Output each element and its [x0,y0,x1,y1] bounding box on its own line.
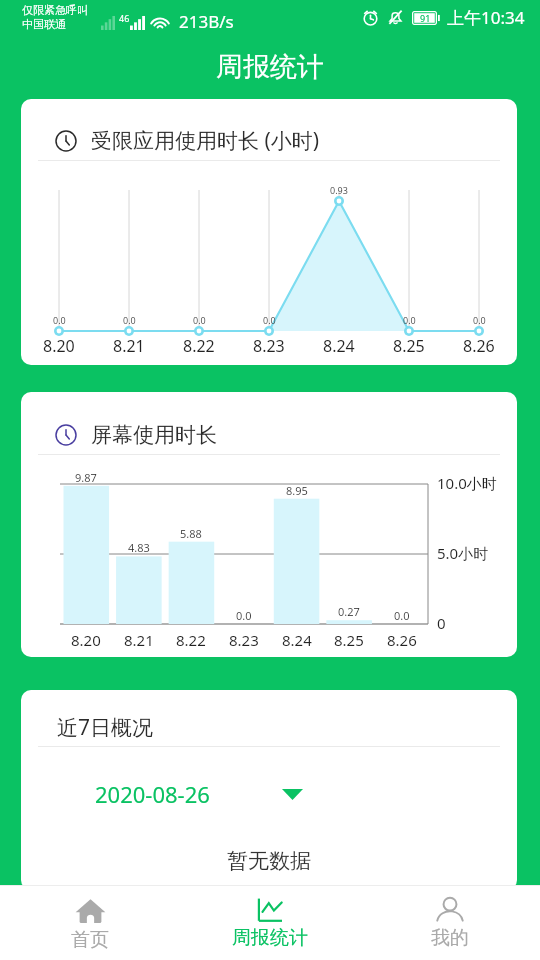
staticText: 91 [420,12,431,24]
staticText: 8.25 [334,630,364,650]
staticText: 暂无数据 [227,848,311,874]
staticText: 8.22 [183,335,215,357]
staticText: 8.23 [253,335,285,357]
staticText: 8.22 [176,630,206,650]
other: Profile [435,895,465,925]
button[interactable]: 2020-08-26 [95,779,303,809]
staticText: 我的 [431,926,469,950]
staticText: 受限应用使用时长 (小时) [91,126,320,155]
staticText: 2020-08-26 [95,779,210,809]
staticText: 8.20 [43,335,75,357]
other: Select date [282,789,303,800]
staticText: 0.0 [193,314,206,326]
staticText: 8.21 [124,630,154,650]
staticText: 0.0 [236,608,252,623]
button[interactable]: Weekly report [180,885,360,960]
staticText: 仅限紧急呼叫 [22,3,88,17]
staticText: 8.24 [323,335,355,357]
other: Home [74,894,107,927]
staticText: 0 [437,613,446,633]
staticText: 8.95 [286,483,308,498]
staticText: 8.25 [393,335,425,357]
staticText: 0.0 [263,314,276,326]
staticText: 首页 [71,928,109,952]
staticText: 8.26 [387,630,417,650]
button[interactable]: Profile [360,885,540,960]
staticText: 近7日概况 [57,713,154,742]
staticText: 0.93 [330,184,348,196]
staticText: 8.26 [463,335,495,357]
staticText: 0.0 [53,314,66,326]
staticText: 0.0 [403,314,416,326]
staticText: 4.83 [128,540,150,555]
staticText: 周报统计 [232,926,308,950]
staticText: 5.0小时 [437,543,489,563]
staticText: 0.27 [338,604,360,619]
staticText: 0.0 [123,314,136,326]
staticText: 9.87 [75,470,97,485]
staticText: 屏幕使用时长 [91,422,217,448]
staticText: 8.20 [71,630,101,650]
staticText: 中国联通 [22,17,66,31]
other: Weekly report [255,895,285,925]
staticText: 213B/s [179,10,234,33]
staticText: 周报统计 [216,50,324,84]
staticText: 46 [119,12,130,24]
staticText: 0.0 [473,314,486,326]
staticText: 上午10:34 [447,6,525,29]
staticText: 8.24 [282,630,312,650]
staticText: 5.88 [180,526,202,541]
staticText: 0.0 [394,608,410,623]
staticText: 10.0小时 [437,473,497,493]
staticText: 8.21 [113,335,145,357]
staticText: 8.23 [229,630,259,650]
button[interactable]: Home [0,885,180,960]
